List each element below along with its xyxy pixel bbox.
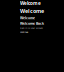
staticText: Continue [20,30,28,33]
staticText: Sign in to your account [20,27,43,29]
staticText: Welcome Back [20,21,44,26]
staticText: Welcome [20,16,35,20]
staticText: Welcome [20,7,44,15]
staticText: Welcome [20,0,41,6]
